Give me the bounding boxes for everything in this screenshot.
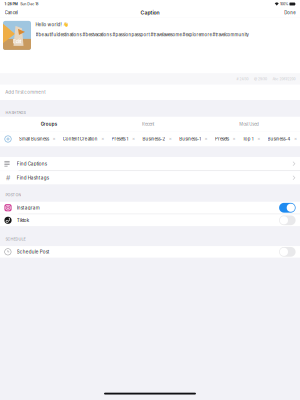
staticText: # — [6, 174, 10, 182]
staticText: ✕ — [257, 137, 260, 141]
button[interactable]: Business-2 — [142, 133, 172, 144]
button[interactable]: Business-4 — [268, 133, 297, 144]
staticText: 100% — [280, 2, 288, 6]
staticText: 1:28 PM — [5, 2, 18, 6]
staticText: Tiktok — [17, 218, 29, 223]
staticText: Top 1 — [243, 136, 254, 142]
button[interactable]: Add hashtag group — [4, 135, 12, 143]
staticText: SCHEDULE — [5, 237, 25, 241]
staticText: Instagram — [17, 205, 40, 210]
staticText: Done — [284, 10, 295, 15]
button[interactable]: Small Business — [19, 133, 55, 144]
staticText: Abc 2061/2200 — [272, 77, 295, 81]
staticText: Groups — [41, 121, 57, 127]
button[interactable]: Cancel — [4, 8, 19, 17]
button[interactable]: Most Used — [198, 117, 300, 131]
button[interactable]: Schedule Post — [0, 246, 300, 258]
button[interactable]: Find Captions — [0, 157, 300, 170]
button[interactable]: Presets — [215, 133, 235, 144]
staticText: ✕ — [101, 137, 104, 141]
button[interactable]: Tiktok — [0, 214, 300, 226]
button[interactable]: Presets 1 — [112, 133, 135, 144]
staticText: Find Captions — [17, 161, 47, 166]
staticText: Business-2 — [142, 136, 165, 142]
staticText: ✕ — [132, 137, 135, 141]
staticText: ✕ — [169, 137, 172, 141]
staticText: Business-1 — [179, 136, 201, 142]
staticText: ✕ — [205, 137, 208, 141]
button[interactable]: Instagram — [0, 202, 300, 214]
staticText: Caption — [140, 10, 159, 16]
staticText: Presets 1 — [112, 136, 129, 142]
staticText: Most Used — [239, 122, 259, 127]
button[interactable]: Business-1 — [179, 133, 208, 144]
button[interactable]: Done — [283, 8, 296, 17]
staticText: Recent — [142, 122, 154, 127]
staticText: Schedule Post — [17, 249, 49, 255]
staticText: Add first comment — [5, 90, 45, 95]
staticText: Presets — [215, 136, 229, 142]
button[interactable]: Content Creation — [63, 133, 104, 144]
staticText: POST ON — [5, 192, 21, 197]
staticText: HASHTAGS — [5, 110, 25, 115]
button[interactable]: Add first comment — [0, 84, 300, 100]
staticText: Hello world! 👋 — [35, 22, 67, 27]
staticText: Business-4 — [268, 136, 291, 142]
staticText: ✕ — [294, 137, 297, 141]
staticText: ✕ — [232, 137, 235, 141]
staticText: # 24/30 — [236, 77, 248, 81]
button[interactable]: Groups — [0, 117, 97, 131]
staticText: ✕ — [52, 137, 55, 141]
button[interactable]: Recent — [97, 117, 198, 131]
staticText: #beautifuldestinations #bestvacations #p… — [35, 32, 248, 37]
staticText: Content Creation — [63, 136, 98, 142]
button[interactable]: # — [0, 171, 300, 185]
button[interactable]: Top 1 — [243, 133, 260, 144]
staticText: Find Hashtags — [17, 175, 49, 181]
staticText: Small Business — [19, 136, 49, 142]
staticText: Cancel — [5, 10, 18, 15]
staticText: Edit — [12, 38, 21, 45]
staticText: Sun Dec 18 — [20, 2, 38, 6]
staticText: @ 29/30 — [254, 77, 267, 81]
